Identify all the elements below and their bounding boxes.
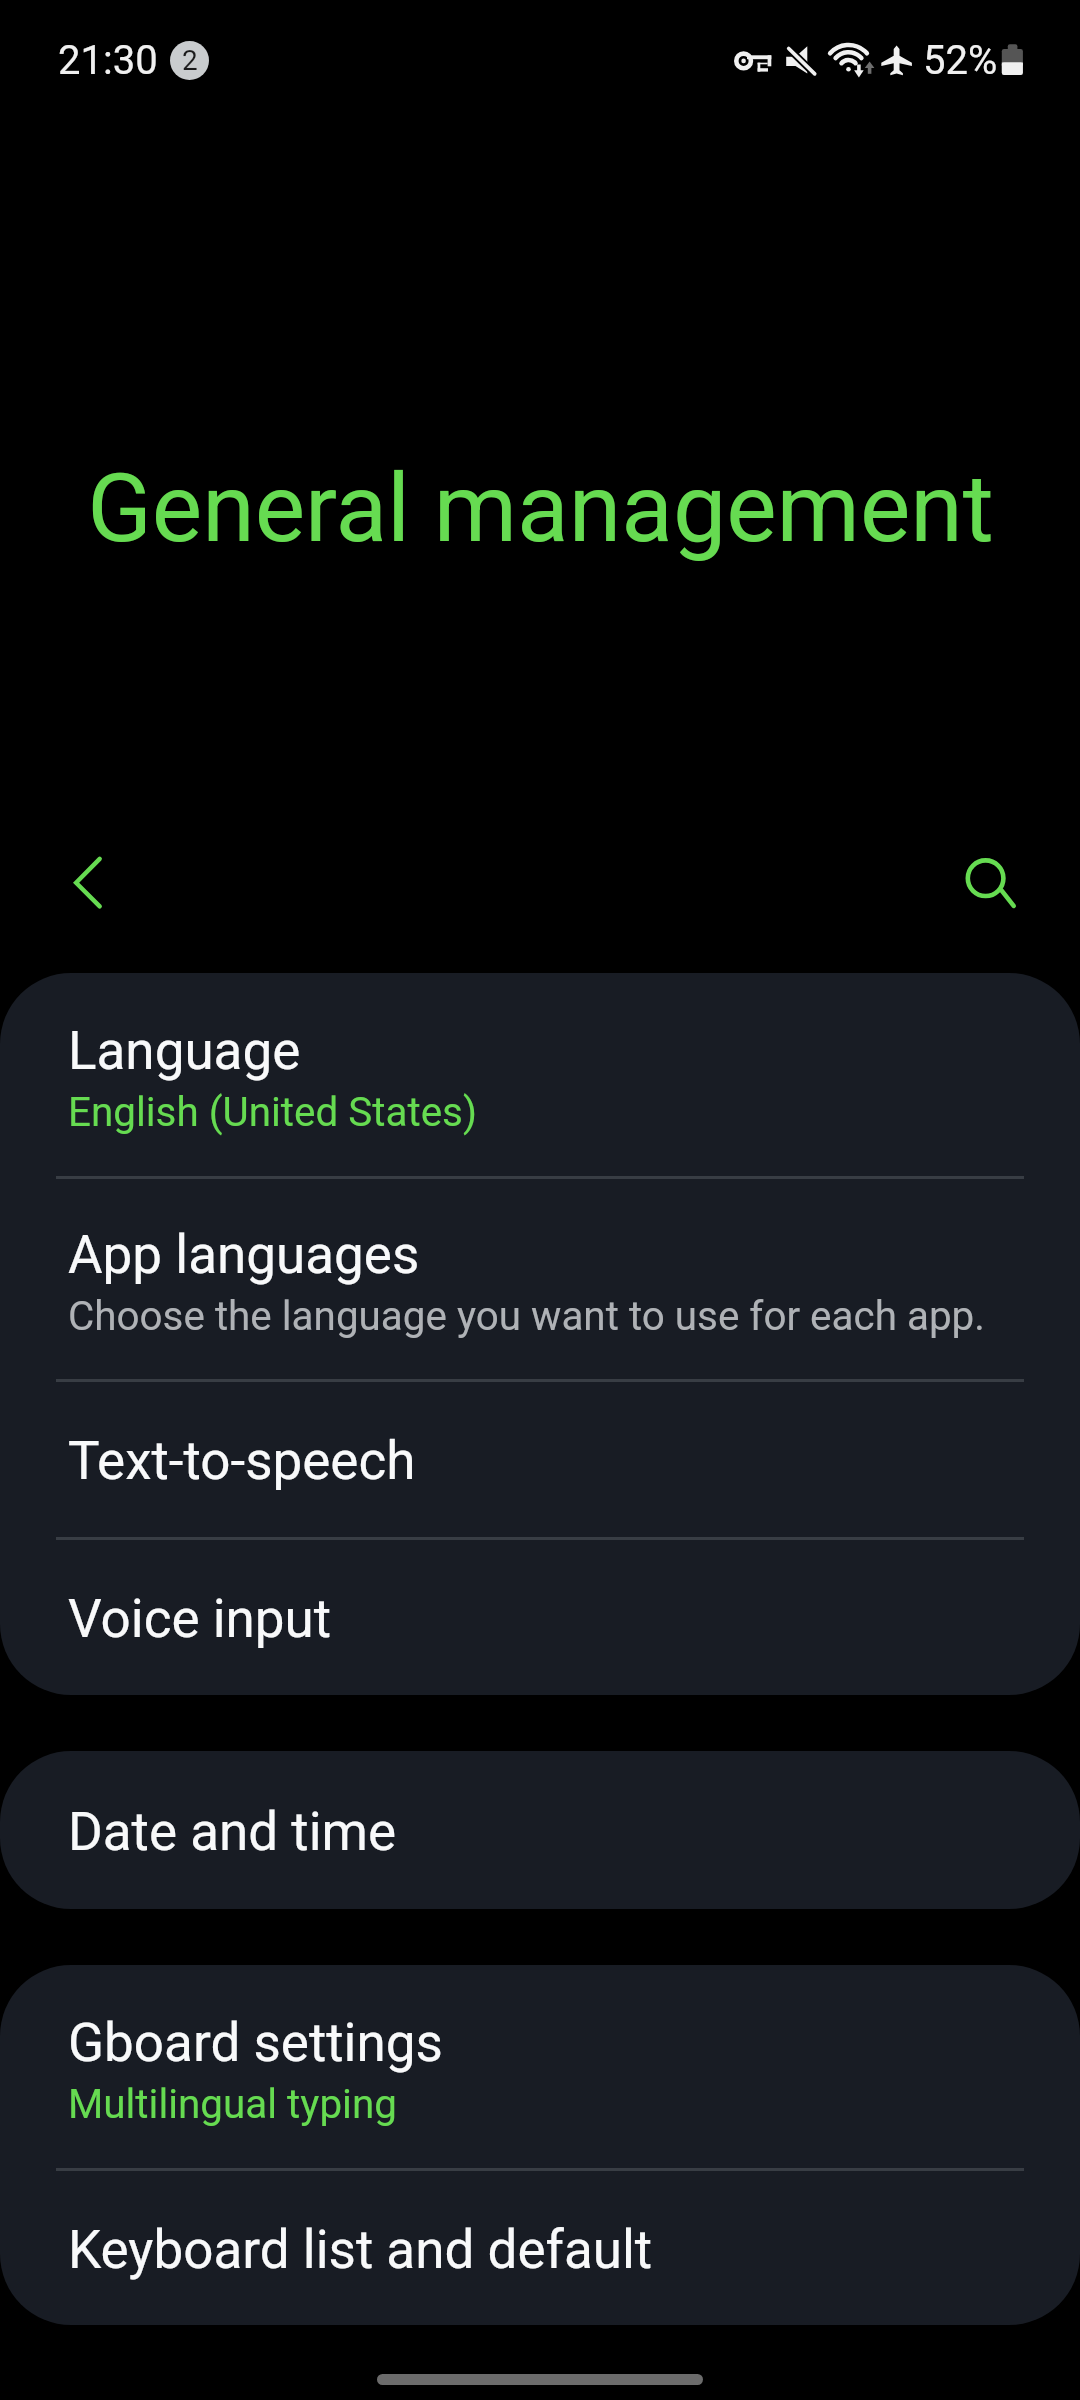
staticText: General management [87,453,994,564]
button[interactable]: Voice input [0,1538,1080,1695]
staticText: 21:30 [58,37,158,84]
staticText: App languages [68,1224,420,1286]
button[interactable]: Navigate up [37,845,113,921]
button[interactable]: Date and time [0,1751,1080,1909]
button[interactable]: App languages [0,1177,1080,1380]
staticText: 52% [923,37,998,84]
button[interactable]: Text-to-speech [0,1380,1080,1538]
staticText: Keyboard list and default [68,2219,653,2281]
staticText: Voice input [68,1588,332,1650]
button[interactable]: Keyboard list and default [0,2169,1080,2325]
staticText: Text-to-speech [68,1430,416,1492]
staticText: Date and time [68,1801,397,1863]
staticText: Choose the language you want to use for … [68,1293,985,1340]
staticText: Gboard settings [68,2012,443,2074]
button[interactable]: Search [948,840,1024,916]
staticText: Multilingual typing [68,2081,397,2128]
staticText: 2 [182,44,198,77]
button[interactable]: Gboard settings [0,1965,1080,2169]
button[interactable]: Language [0,973,1080,1177]
staticText: Language [68,1020,301,1082]
staticText: English (United States) [68,1089,477,1136]
